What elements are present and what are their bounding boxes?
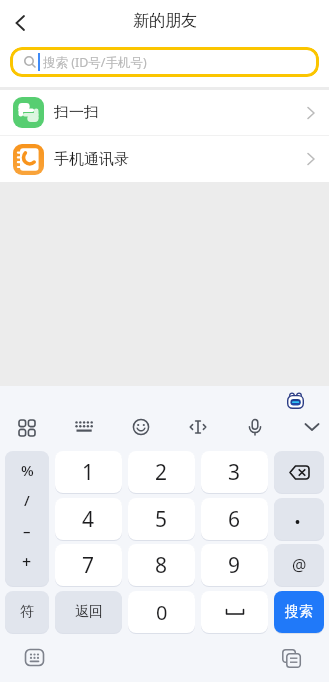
staticText: 5 <box>155 505 168 534</box>
staticText: 3 <box>228 458 241 487</box>
button[interactable]: 2 <box>128 451 195 493</box>
button[interactable]: 9 <box>201 544 268 586</box>
staticText: + <box>22 551 32 573</box>
button[interactable] <box>201 591 268 633</box>
staticText: 4 <box>82 505 95 534</box>
staticText: 符 <box>20 603 34 621</box>
staticText: 7 <box>82 551 95 580</box>
staticText: 扫一扫 <box>54 103 99 122</box>
button[interactable]: 6 <box>201 498 268 540</box>
button[interactable] <box>274 451 324 493</box>
button[interactable]: 符 <box>5 591 49 633</box>
staticText: – <box>23 521 31 541</box>
button[interactable]: 搜索 (ID号/手机号) <box>10 47 319 77</box>
button[interactable]: 扫一扫 <box>0 90 329 135</box>
staticText: 返回 <box>75 603 103 621</box>
button[interactable]: 3 <box>201 451 268 493</box>
button[interactable] <box>13 414 41 440</box>
button[interactable] <box>274 498 324 540</box>
button[interactable] <box>25 649 45 667</box>
staticText: / <box>24 490 30 510</box>
staticText: 搜索 <box>285 603 313 621</box>
staticText: 0 <box>156 599 168 626</box>
button[interactable]: 8 <box>128 544 195 586</box>
staticText: 6 <box>228 505 241 534</box>
staticText: 2 <box>155 458 168 487</box>
button[interactable] <box>127 414 155 440</box>
staticText: 手机通讯录 <box>54 150 129 169</box>
staticText: 搜索 (ID号/手机号) <box>43 54 147 71</box>
staticText: 新的朋友 <box>133 11 197 31</box>
button[interactable]: 0 <box>128 591 195 633</box>
button[interactable]: 5 <box>128 498 195 540</box>
button[interactable]: % <box>5 451 49 586</box>
button[interactable]: @ <box>274 544 324 586</box>
button[interactable] <box>298 414 326 440</box>
button[interactable]: 手机通讯录 <box>0 136 329 182</box>
staticText: 1 <box>82 458 95 487</box>
button[interactable]: 7 <box>55 544 122 586</box>
button[interactable] <box>282 649 302 668</box>
button[interactable] <box>241 414 269 440</box>
button[interactable]: 1 <box>55 451 122 493</box>
button[interactable]: 返回 <box>55 591 122 633</box>
button[interactable]: 4 <box>55 498 122 540</box>
staticText: @ <box>292 554 307 576</box>
button[interactable]: 搜索 <box>274 591 324 633</box>
staticText: % <box>21 460 34 480</box>
staticText: 9 <box>228 551 241 580</box>
button[interactable] <box>8 10 34 36</box>
staticText: 8 <box>155 551 168 580</box>
button[interactable] <box>70 414 98 440</box>
button[interactable] <box>184 414 212 440</box>
